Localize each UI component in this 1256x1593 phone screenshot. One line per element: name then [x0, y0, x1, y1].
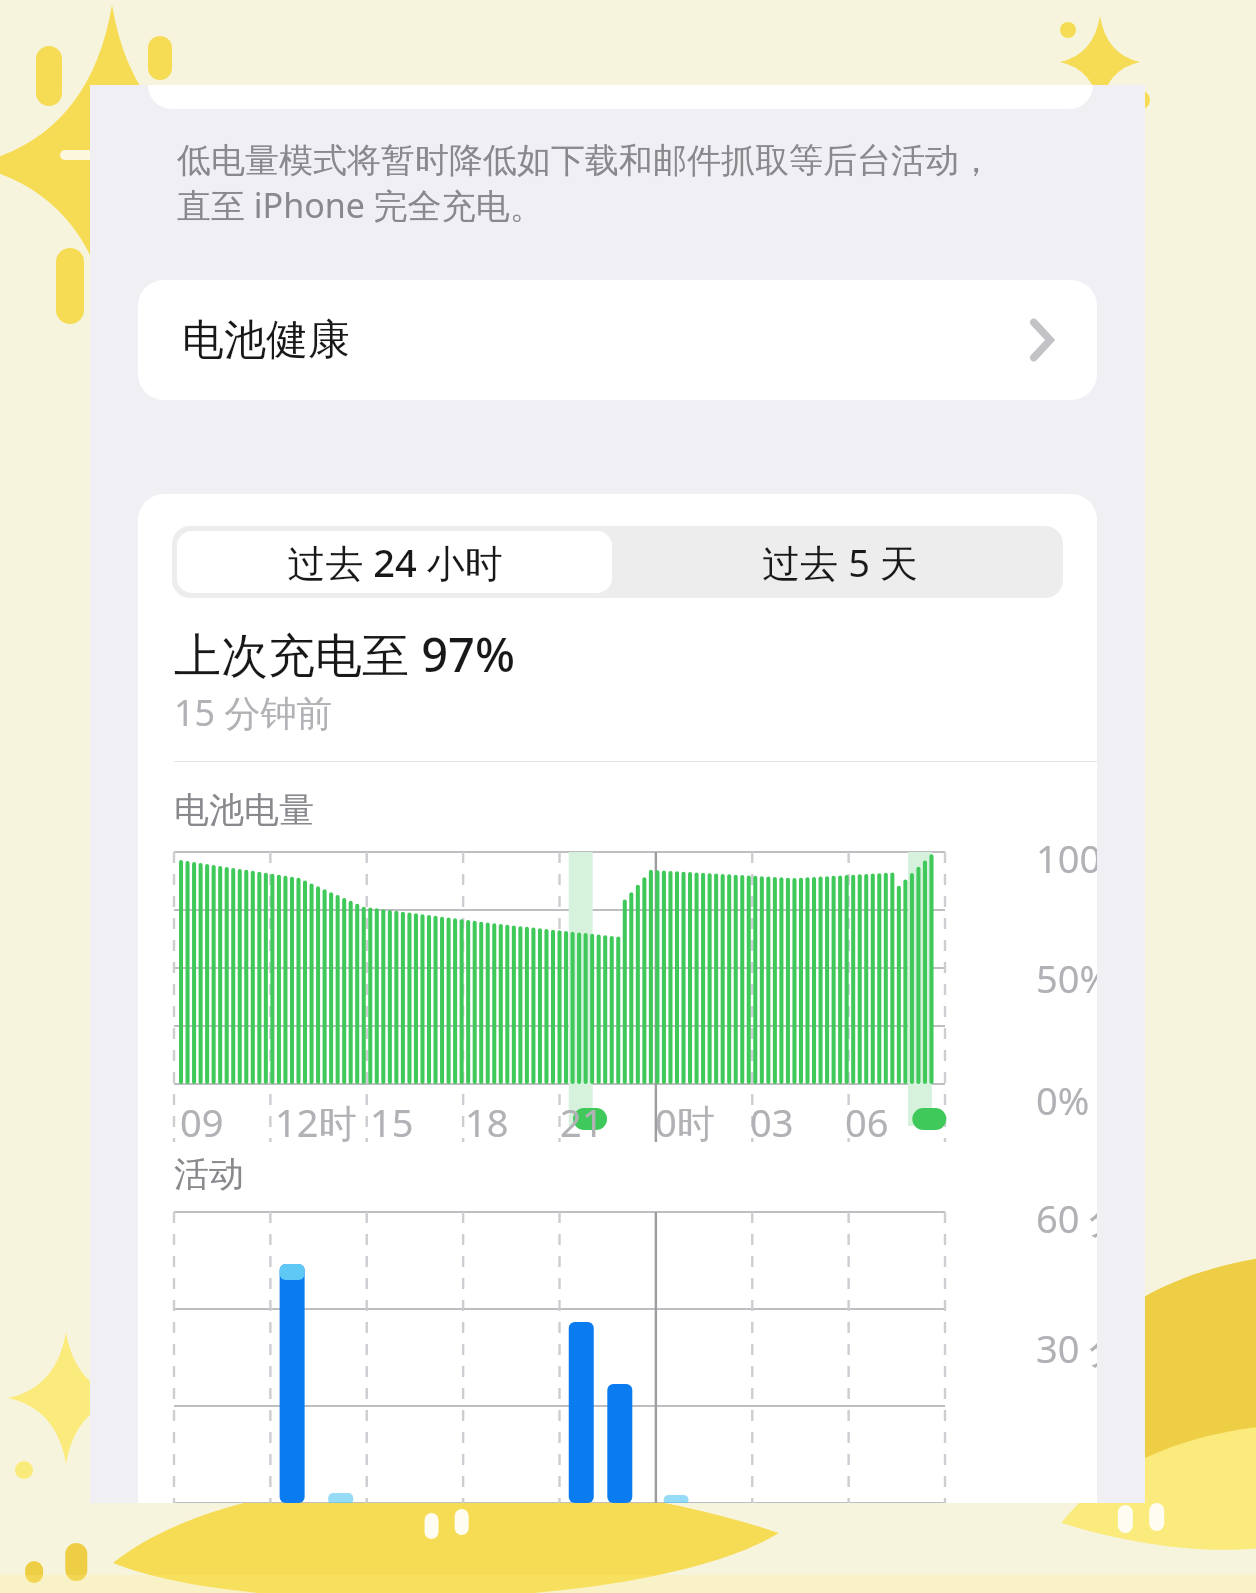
- staticText: 15 分钟前: [174, 688, 333, 737]
- staticText: 直至 iPhone 完全充电。: [177, 182, 544, 228]
- staticText: 03: [750, 1096, 794, 1148]
- staticText: 上次充电至 97%: [174, 622, 516, 686]
- other: Open battery health: [1029, 319, 1053, 361]
- staticText: 60 分钟: [1036, 1192, 1097, 1244]
- staticText: 21: [560, 1096, 604, 1148]
- staticText: 50%: [1036, 952, 1097, 1004]
- staticText: 0%: [1036, 1074, 1090, 1126]
- button[interactable]: 过去 5 天: [617, 526, 1063, 598]
- button[interactable]: 过去 24 小时: [177, 531, 612, 593]
- staticText: 15: [370, 1096, 414, 1148]
- staticText: 0时: [655, 1096, 715, 1148]
- staticText: 30 分钟: [1036, 1322, 1097, 1374]
- staticText: 过去 24 小时: [287, 536, 503, 588]
- staticText: 电池健康: [182, 314, 350, 367]
- staticText: 100%: [1036, 832, 1097, 884]
- staticText: 活动: [174, 1152, 244, 1196]
- staticText: 09: [180, 1096, 224, 1148]
- staticText: 低电量模式将暂时降低如下载和邮件抓取等后台活动，: [177, 139, 993, 182]
- staticText: 12时: [275, 1096, 357, 1148]
- staticText: 过去 5 天: [762, 536, 918, 588]
- staticText: 电池电量: [174, 788, 314, 832]
- staticText: 06: [845, 1096, 889, 1148]
- staticText: 18: [465, 1096, 509, 1148]
- button[interactable]: 电池健康: [138, 280, 1097, 400]
